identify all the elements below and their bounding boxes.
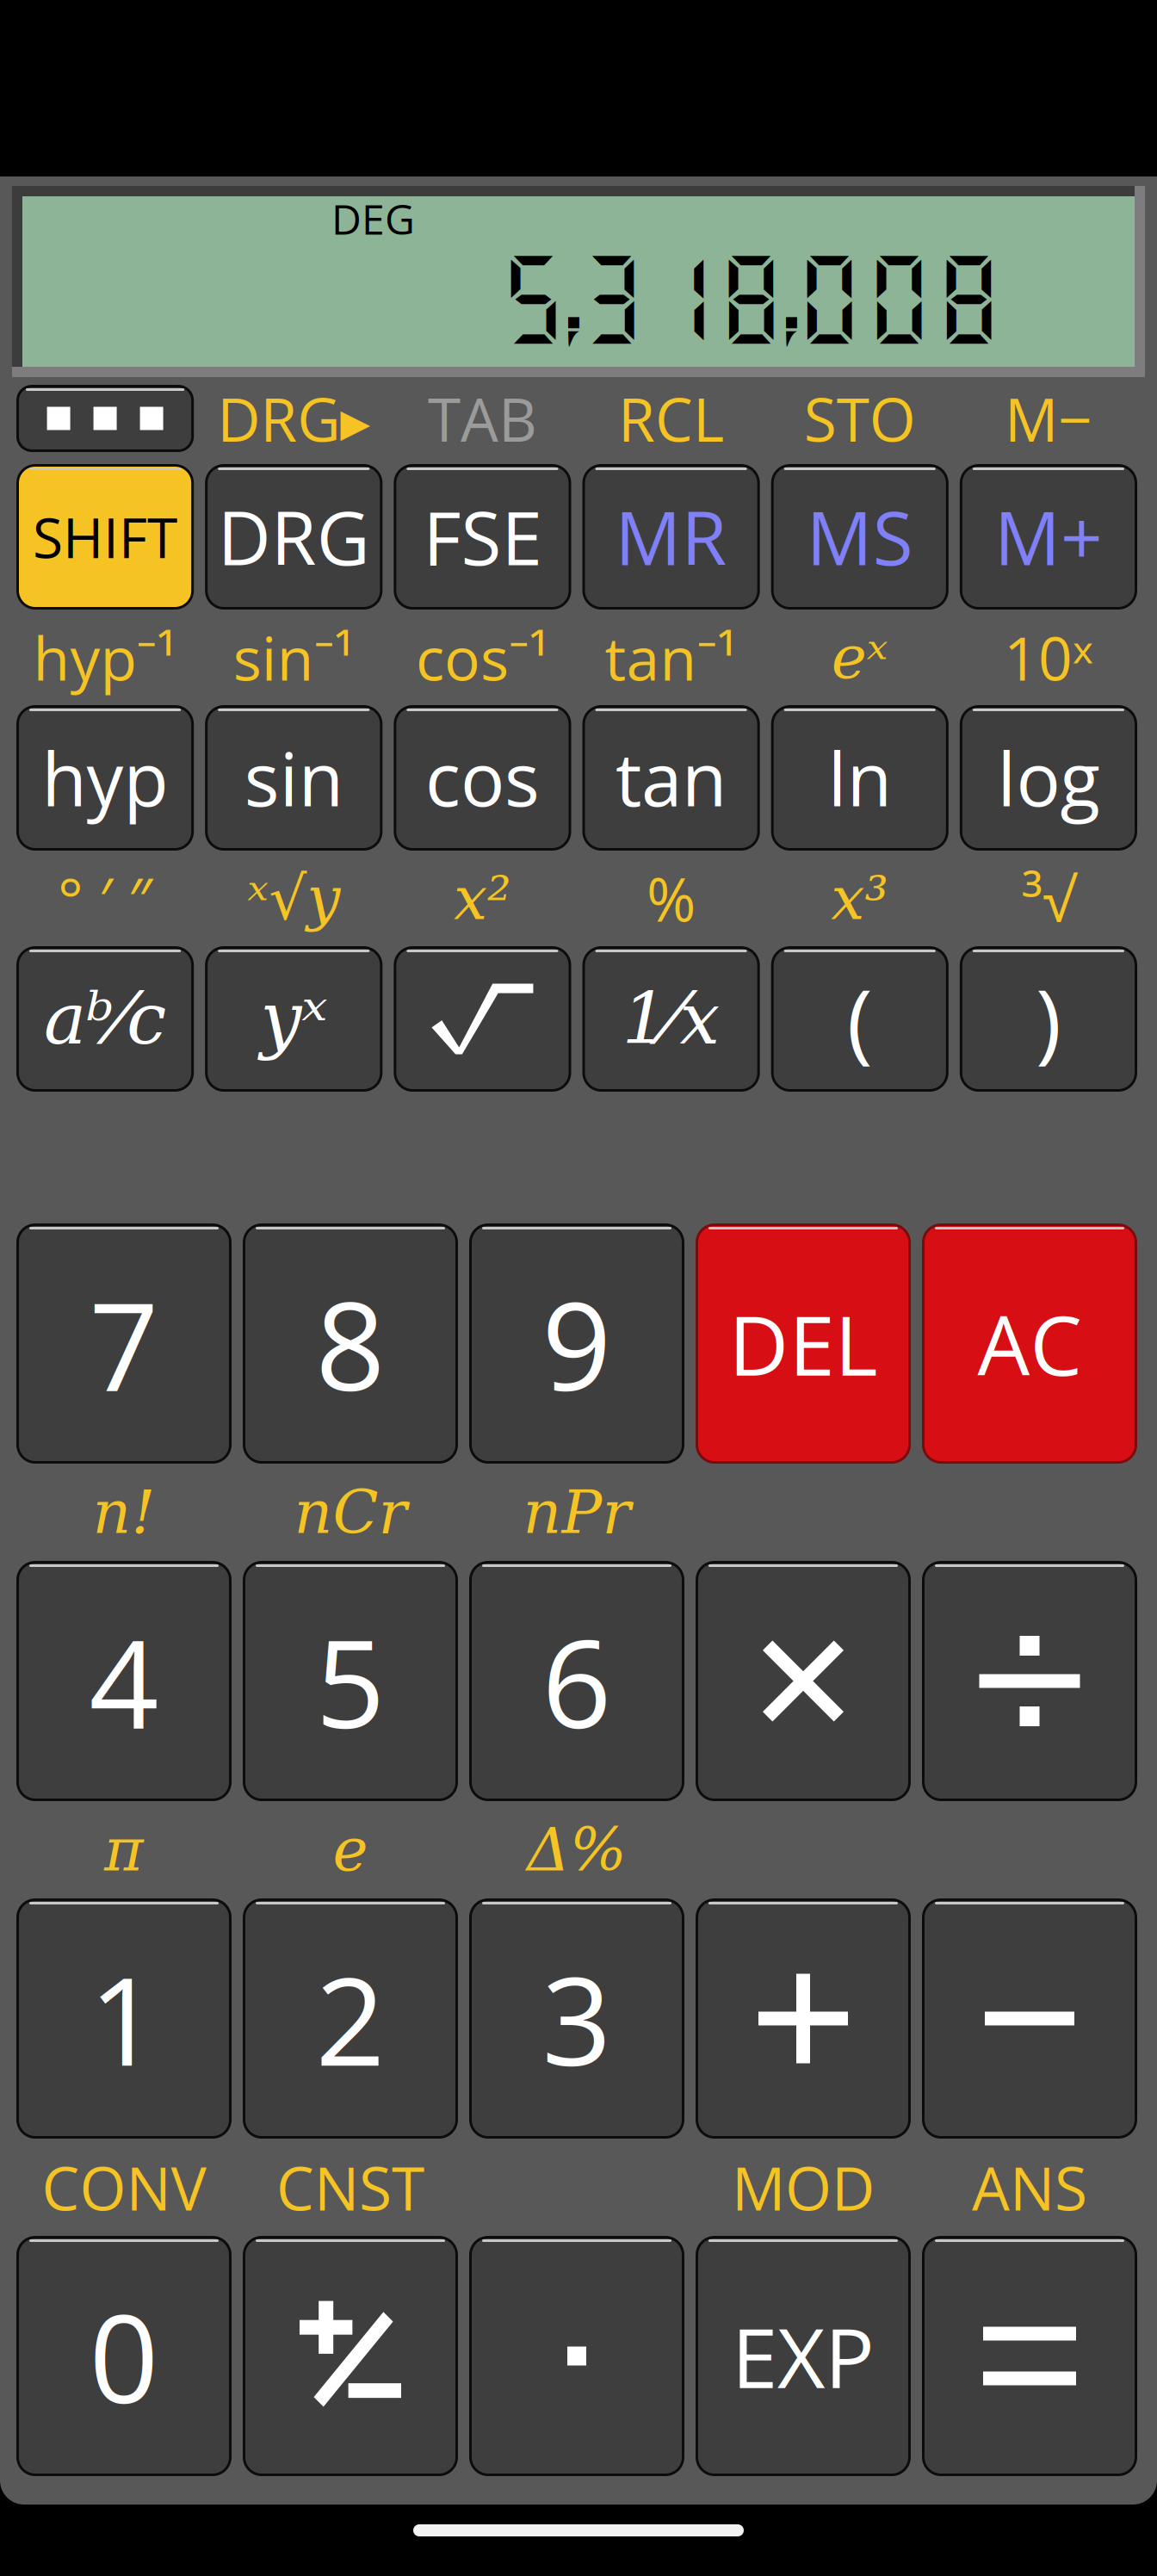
- staticText: RCL: [618, 378, 724, 459]
- button[interactable]: 4: [16, 1561, 232, 1801]
- staticText: 6: [542, 1598, 612, 1764]
- button[interactable]: M+: [960, 464, 1137, 610]
- button[interactable]: 2: [243, 1898, 458, 2139]
- button[interactable]: cos: [394, 705, 571, 851]
- staticText: tan⁻¹: [605, 617, 737, 698]
- staticText: 1⁄x: [622, 978, 720, 1060]
- button[interactable]: ln: [771, 705, 949, 851]
- button[interactable]: 0: [16, 2236, 232, 2476]
- button[interactable]: Divide: [922, 1561, 1137, 1801]
- staticText: 8: [316, 1261, 385, 1426]
- staticText: M−: [1005, 378, 1092, 459]
- button[interactable]: 1: [16, 1898, 232, 2139]
- button[interactable]: AC: [922, 1223, 1137, 1464]
- staticText: DEG: [331, 191, 415, 247]
- button[interactable]: yˣ: [205, 946, 383, 1092]
- staticText: hyp: [42, 728, 168, 828]
- staticText: log: [997, 728, 1100, 828]
- staticText: CNST: [276, 2147, 424, 2228]
- staticText: x²: [454, 864, 511, 933]
- button[interactable]: 6: [469, 1561, 684, 1801]
- staticText: FSE: [423, 487, 542, 587]
- staticText: 9: [542, 1261, 612, 1426]
- staticText: tan: [616, 728, 727, 828]
- staticText: DEL: [729, 1287, 878, 1400]
- staticText: 7: [89, 1261, 159, 1426]
- button[interactable]: More options: [16, 385, 194, 452]
- staticText: MOD: [732, 2147, 875, 2228]
- staticText: 1: [89, 1936, 159, 2101]
- button[interactable]: tan: [582, 705, 760, 851]
- staticText: 0: [89, 2273, 159, 2439]
- staticText: nCr: [294, 1477, 407, 1547]
- staticText: sin⁻¹: [233, 617, 355, 698]
- staticText: π: [104, 1815, 144, 1884]
- staticText: STO: [804, 378, 916, 459]
- staticText: SHIFT: [33, 499, 177, 574]
- staticText: eˣ: [831, 623, 888, 692]
- button[interactable]: (: [771, 946, 949, 1092]
- button[interactable]: Plus: [696, 1898, 911, 2139]
- staticText: e: [333, 1815, 368, 1884]
- staticText: cos: [425, 728, 540, 828]
- button[interactable]: Change sign: [243, 2236, 458, 2476]
- staticText: n!: [93, 1477, 155, 1547]
- staticText: DRG: [218, 487, 370, 587]
- staticText: MR: [615, 487, 727, 587]
- staticText: TAB: [428, 378, 537, 459]
- staticText: ): [1036, 960, 1061, 1078]
- button[interactable]: 9: [469, 1223, 684, 1464]
- button[interactable]: log: [960, 705, 1137, 851]
- staticText: 2: [316, 1936, 385, 2101]
- staticText: aᵇ⁄c: [44, 978, 166, 1060]
- button[interactable]: DEL: [696, 1223, 911, 1464]
- staticText: yˣ: [260, 976, 327, 1062]
- staticText: MS: [806, 487, 913, 587]
- staticText: sin: [244, 728, 343, 828]
- staticText: (: [847, 960, 873, 1078]
- staticText: 5: [316, 1598, 385, 1764]
- staticText: ˣ√y: [247, 864, 340, 933]
- staticText: 4: [89, 1598, 159, 1764]
- button[interactable]: Multiply: [696, 1561, 911, 1801]
- button[interactable]: Square root: [394, 946, 571, 1092]
- staticText: x³: [831, 864, 889, 933]
- staticText: ° ′ ″: [58, 858, 152, 939]
- staticText: EXP: [732, 2300, 875, 2412]
- button[interactable]: sin: [205, 705, 383, 851]
- staticText: M+: [994, 487, 1103, 587]
- button[interactable]: Equals: [922, 2236, 1137, 2476]
- button[interactable]: SHIFT: [16, 464, 194, 610]
- button[interactable]: DRG: [205, 464, 383, 610]
- staticText: ln: [828, 728, 892, 828]
- staticText: hyp⁻¹: [33, 617, 177, 698]
- button[interactable]: FSE: [394, 464, 571, 610]
- staticText: DRG▸: [217, 378, 370, 459]
- staticText: 3: [542, 1936, 612, 2101]
- button[interactable]: 1⁄x: [582, 946, 760, 1092]
- staticText: nPr: [523, 1477, 631, 1547]
- staticText: CONV: [42, 2147, 206, 2228]
- button[interactable]: hyp: [16, 705, 194, 851]
- staticText: ³√: [1022, 858, 1075, 939]
- staticText: %: [647, 858, 696, 939]
- button[interactable]: 5: [243, 1561, 458, 1801]
- staticText: 5,318,008: [498, 241, 1004, 353]
- button[interactable]: 3: [469, 1898, 684, 2139]
- button[interactable]: aᵇ⁄c: [16, 946, 194, 1092]
- staticText: Δ%: [527, 1815, 627, 1884]
- button[interactable]: ): [960, 946, 1137, 1092]
- staticText: 10ˣ: [1004, 617, 1093, 698]
- staticText: cos⁻¹: [416, 617, 549, 698]
- staticText: AC: [978, 1287, 1082, 1400]
- button[interactable]: 7: [16, 1223, 232, 1464]
- button[interactable]: MR: [582, 464, 760, 610]
- button[interactable]: 8: [243, 1223, 458, 1464]
- button[interactable]: EXP: [696, 2236, 911, 2476]
- button[interactable]: MS: [771, 464, 949, 610]
- button[interactable]: Minus: [922, 1898, 1137, 2139]
- staticText: ANS: [972, 2147, 1087, 2228]
- button[interactable]: Decimal point: [469, 2236, 684, 2476]
